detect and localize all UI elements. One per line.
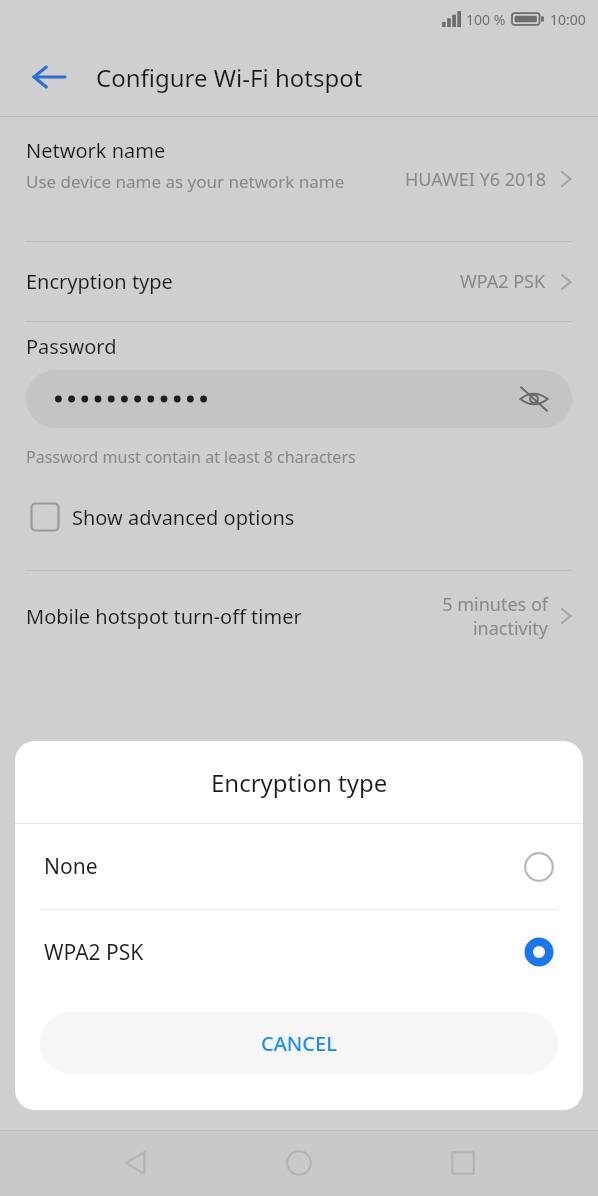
button[interactable]: Home	[271, 1135, 327, 1191]
button[interactable]: Network name	[0, 117, 598, 241]
staticText: HUAWEI Y6 2018	[405, 167, 546, 192]
button[interactable]: Back	[22, 50, 76, 104]
staticText: 10:00	[550, 10, 586, 29]
button[interactable]: Show password	[26, 370, 572, 428]
button[interactable]: Encryption type	[0, 242, 598, 321]
button[interactable]: None	[15, 824, 583, 909]
staticText: Show advanced options	[72, 504, 295, 531]
staticText: 5 minutes of inactivity	[418, 592, 548, 640]
staticText: Encryption type	[211, 766, 388, 799]
button[interactable]: Show advanced options	[0, 490, 598, 544]
staticText: Mobile hotspot turn-off timer	[26, 603, 302, 630]
staticText: CANCEL	[261, 1030, 337, 1057]
staticText: None	[44, 852, 98, 881]
button[interactable]: WPA2 PSK	[15, 910, 583, 994]
button[interactable]: Back	[108, 1135, 164, 1191]
button[interactable]: Show password	[512, 377, 556, 421]
staticText: 100 %	[466, 10, 506, 29]
button[interactable]: Mobile hotspot turn-off timer	[0, 571, 598, 661]
button[interactable]: CANCEL	[40, 1012, 558, 1074]
staticText: Network name	[26, 137, 166, 164]
staticText: WPA2 PSK	[460, 269, 546, 294]
button[interactable]: Recent apps	[435, 1135, 491, 1191]
staticText: Configure Wi-Fi hotspot	[96, 61, 363, 94]
staticText: Password	[26, 333, 117, 360]
staticText: Password must contain at least 8 charact…	[26, 446, 356, 468]
staticText: WPA2 PSK	[44, 938, 144, 967]
staticText: Encryption type	[26, 268, 173, 295]
staticText: Use device name as your network name	[26, 170, 345, 193]
